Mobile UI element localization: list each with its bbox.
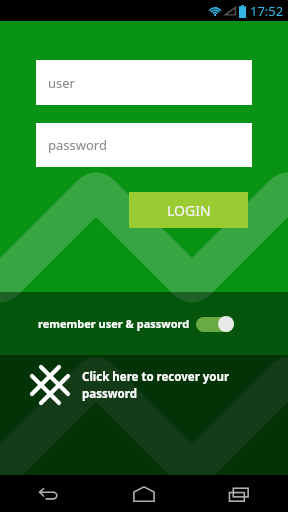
button[interactable]: LOGIN [129, 192, 248, 228]
button[interactable]: Home [96, 475, 192, 512]
button[interactable]: Click here to recover your password [0, 355, 288, 415]
staticText: remember user & password [38, 316, 190, 331]
button[interactable]: remember user & password [0, 292, 288, 355]
button[interactable]: Back [0, 475, 96, 512]
button[interactable]: user [36, 60, 252, 105]
staticText: Click here to recover your password [82, 369, 242, 401]
button[interactable]: Recent apps [192, 475, 288, 512]
staticText: password [48, 136, 107, 154]
staticText: LOGIN [167, 201, 211, 220]
staticText: user [48, 74, 75, 92]
staticText: 17:52 [250, 2, 284, 20]
button[interactable]: password [36, 123, 252, 167]
